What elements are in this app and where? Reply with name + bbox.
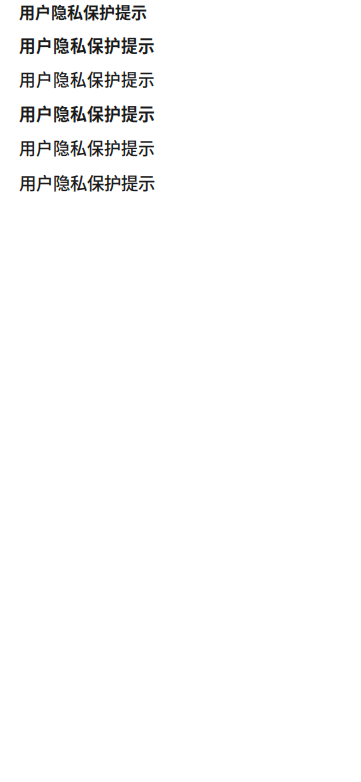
staticText: 用户隐私保护提示 <box>19 67 155 91</box>
staticText: 用户隐私保护提示 <box>19 0 147 23</box>
staticText: 用户隐私保护提示 <box>19 101 155 125</box>
staticText: 用户隐私保护提示 <box>19 135 155 160</box>
staticText: 用户隐私保护提示 <box>19 33 155 57</box>
staticText: 用户隐私保护提示 <box>19 170 155 195</box>
